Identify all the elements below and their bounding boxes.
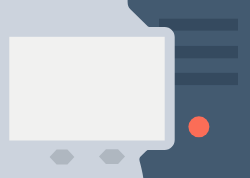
button[interactable]: Home [99, 149, 125, 164]
button[interactable]: Back [50, 150, 75, 165]
button[interactable]: Create [188, 116, 209, 137]
